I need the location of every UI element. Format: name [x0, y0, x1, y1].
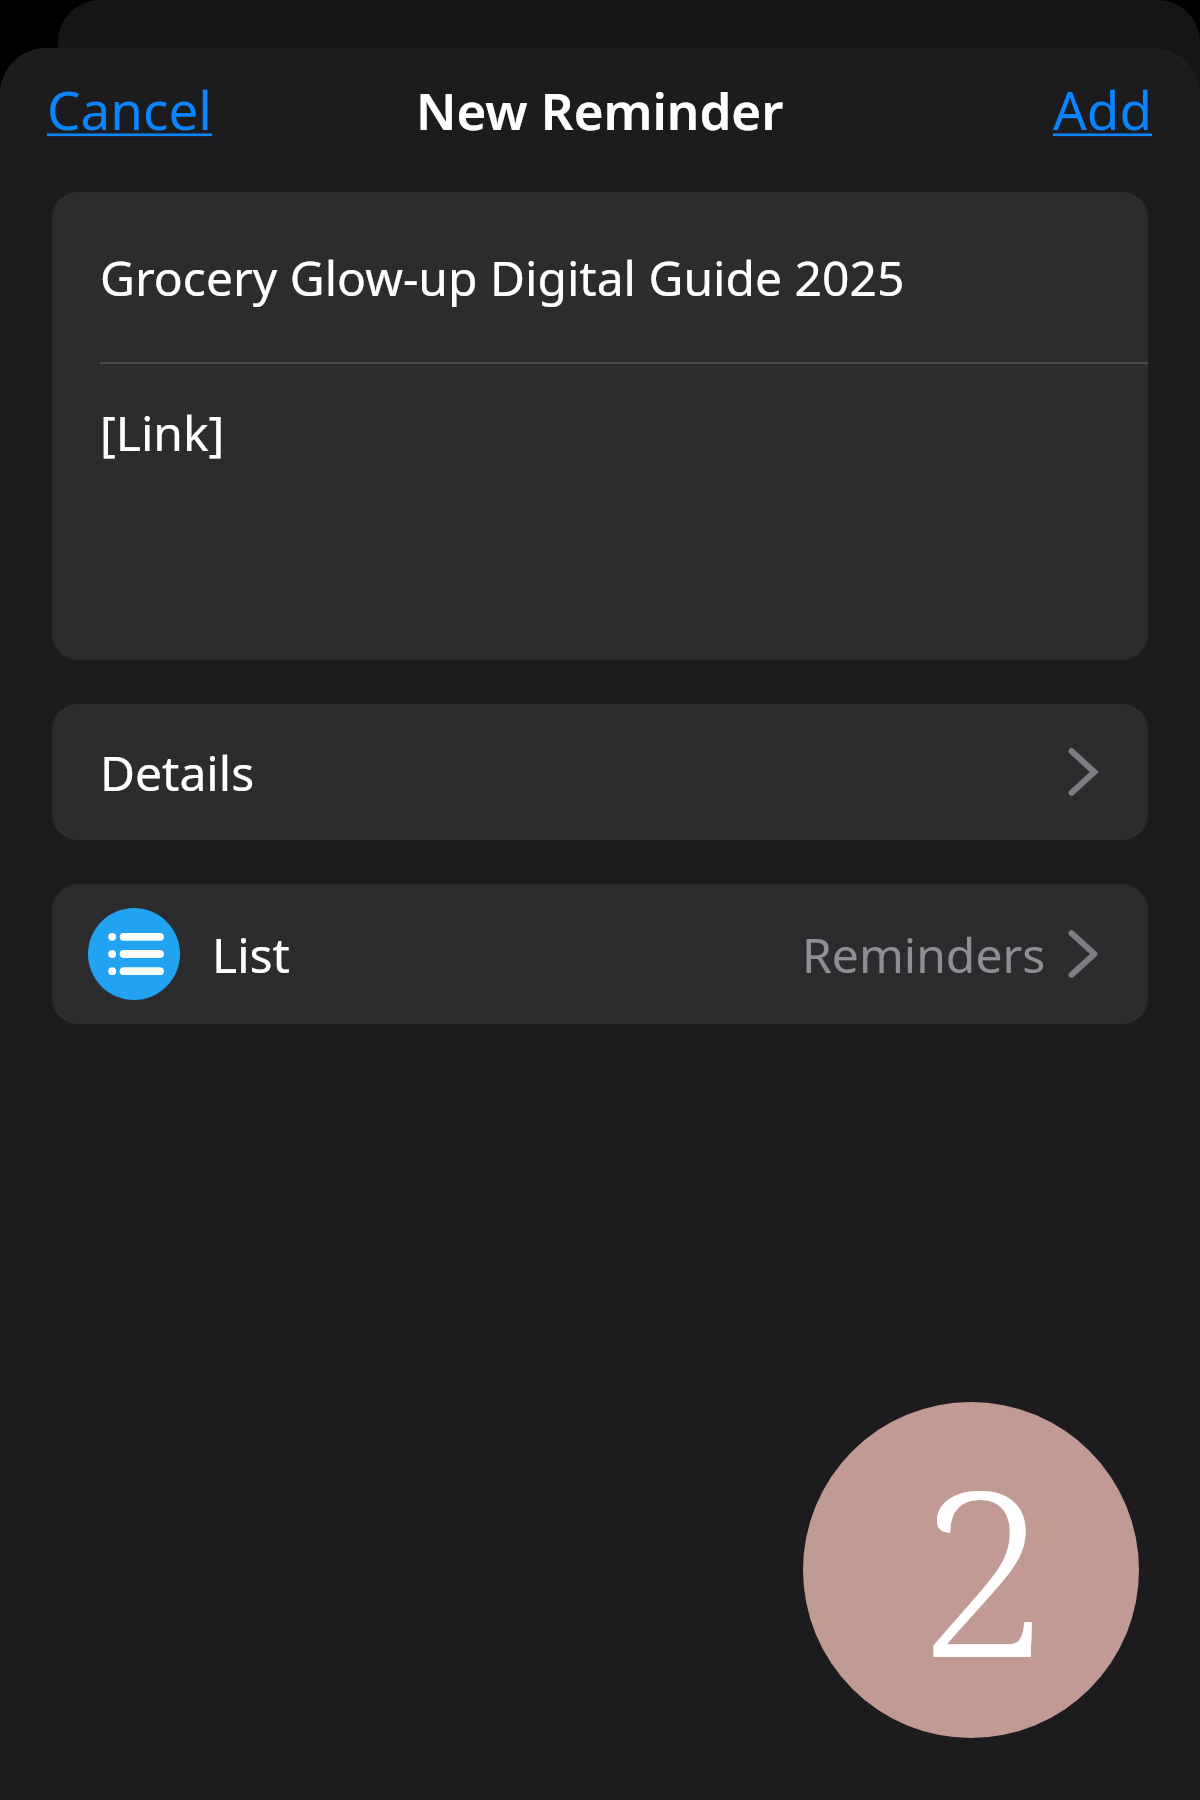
- staticText: 2: [920, 1411, 1049, 1724]
- staticText: Reminders: [802, 922, 1046, 987]
- button[interactable]: Grocery Glow-up Digital Guide 2025: [52, 192, 1148, 362]
- staticText: New Reminder: [416, 75, 784, 144]
- staticText: [Link]: [100, 400, 225, 465]
- staticText: List: [212, 922, 290, 987]
- button[interactable]: Cancel: [42, 63, 217, 155]
- button[interactable]: List: [52, 884, 1148, 1024]
- button[interactable]: [Link]: [52, 364, 1148, 660]
- staticText: Details: [100, 740, 255, 805]
- button[interactable]: Details: [52, 704, 1148, 840]
- button[interactable]: Badge 2: [803, 1402, 1139, 1738]
- staticText: Add: [1053, 73, 1153, 145]
- staticText: Cancel: [47, 73, 212, 145]
- staticText: Grocery Glow-up Digital Guide 2025: [100, 245, 905, 310]
- button[interactable]: Add: [1048, 63, 1158, 155]
